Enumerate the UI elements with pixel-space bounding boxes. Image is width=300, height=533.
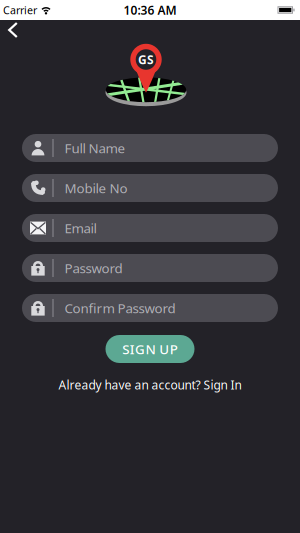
- staticText: GS: [138, 51, 154, 67]
- button[interactable]: Already have an account? Sign In: [58, 377, 241, 393]
- staticText: Password: [64, 259, 122, 277]
- staticText: Already have an account? Sign In: [58, 377, 241, 393]
- staticText: Full Name: [64, 139, 125, 157]
- button[interactable]: SIGN UP: [105, 335, 194, 363]
- staticText: Confirm Password: [64, 299, 175, 317]
- staticText: Carrier: [3, 3, 37, 17]
- staticText: SIGN UP: [122, 340, 178, 358]
- staticText: Mobile No: [64, 179, 127, 197]
- staticText: 10:36 AM: [123, 2, 176, 18]
- staticText: Email: [64, 219, 96, 237]
- button[interactable]: Back: [0, 22, 19, 42]
